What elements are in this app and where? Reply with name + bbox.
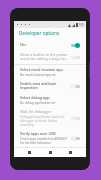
button[interactable]: On	[14, 39, 86, 50]
staticText: Select debug app	[20, 95, 50, 100]
button[interactable]: Select debug app	[14, 93, 86, 107]
staticText: Check apps installed via ADB/ADT for har…	[20, 137, 68, 145]
staticText: Show a button in the power menu for taki…	[20, 52, 68, 62]
staticText: Wait for debugger	[20, 109, 52, 114]
staticText: No debug application set	[20, 101, 56, 105]
button[interactable]: Recent apps	[66, 148, 75, 157]
staticText: Debugged application waits for debugger …	[20, 115, 68, 127]
staticText: Select mock location app	[20, 67, 63, 72]
staticText: Enable view attribute inspection	[20, 81, 68, 91]
staticText: No mock location app set	[20, 73, 56, 77]
button[interactable]: Verify apps over USB	[14, 129, 86, 147]
staticText: Developer options	[19, 30, 60, 36]
staticText: 100	[79, 23, 84, 27]
button[interactable]: Wait for debugger	[14, 107, 86, 129]
button[interactable]: Back	[25, 148, 34, 157]
staticText: On	[20, 42, 71, 48]
button[interactable]: Select mock location app	[14, 65, 86, 79]
staticText: Verify apps over USB	[20, 131, 56, 136]
button[interactable]: Home	[46, 148, 55, 157]
button[interactable]: Show a button in the power menu for taki…	[14, 50, 86, 64]
button[interactable]: Enable view attribute inspection	[14, 79, 86, 93]
